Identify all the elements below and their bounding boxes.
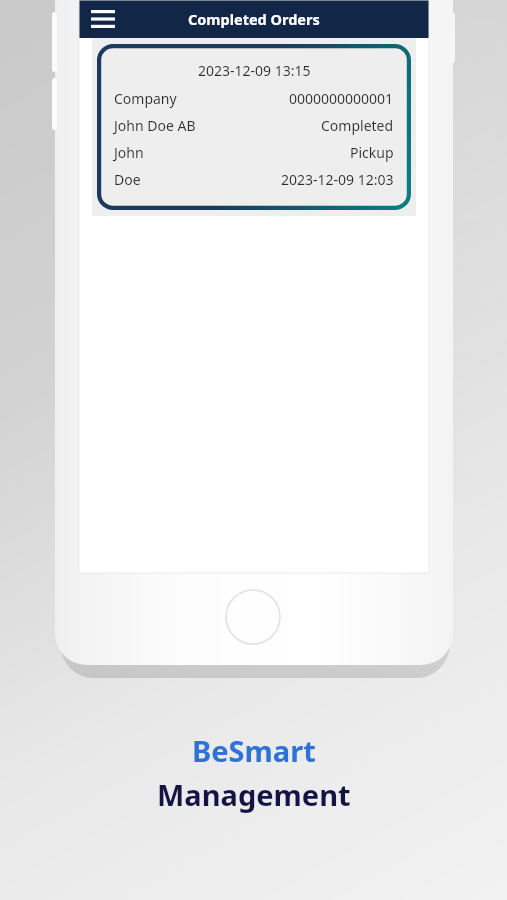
staticText: Management (157, 775, 351, 814)
staticText: 2023-12-09 12:03 (281, 170, 394, 189)
staticText: 2023-12-09 13:15 (198, 61, 311, 80)
staticText: Doe (114, 170, 141, 189)
staticText: Company (114, 89, 177, 108)
staticText: Completed (321, 116, 394, 135)
button[interactable]: Open navigation menu (87, 3, 119, 35)
staticText: BeSmart (192, 731, 316, 770)
staticText: Completed Orders (188, 9, 320, 29)
staticText: John Doe AB (114, 116, 196, 135)
staticText: John (114, 143, 144, 162)
button[interactable]: 2023-12-09 13:15 (97, 44, 411, 210)
staticText: 0000000000001 (289, 89, 394, 108)
button[interactable]: Completed Orders (188, 9, 320, 29)
staticText: Pickup (350, 143, 394, 162)
